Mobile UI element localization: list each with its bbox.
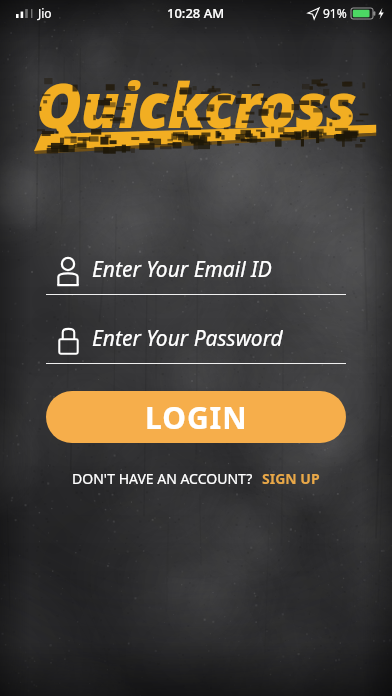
staticText: Enter Your Password (92, 324, 283, 353)
button[interactable]: SIGN UP (262, 469, 320, 488)
button[interactable]: Enter Your Email ID (46, 254, 346, 295)
staticText: DON'T HAVE AN ACCOUNT? (72, 469, 253, 488)
staticText: 91% (323, 5, 347, 21)
staticText: Jio (38, 5, 52, 21)
staticText: SIGN UP (262, 469, 320, 488)
button[interactable]: Enter Your Password (46, 323, 346, 364)
staticText: 10:28 AM (167, 4, 225, 22)
button[interactable]: LOGIN (46, 391, 346, 443)
staticText: Quickcross (36, 62, 356, 146)
staticText: Enter Your Email ID (92, 255, 272, 284)
staticText: LOGIN (145, 397, 248, 438)
